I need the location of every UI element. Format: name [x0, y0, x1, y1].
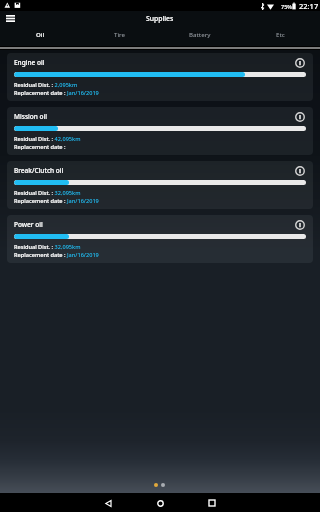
- button[interactable]: Engine oil: [7, 53, 313, 101]
- staticText: Mission oil: [14, 112, 48, 121]
- button[interactable]: Information: [293, 218, 306, 231]
- staticText: Break/Clutch oil: [14, 166, 64, 175]
- button[interactable]: Recent apps: [197, 494, 226, 512]
- button[interactable]: Etc: [240, 28, 320, 46]
- staticText: Supplies: [146, 14, 174, 23]
- staticText: Oil: [36, 30, 45, 38]
- staticText: 22:17: [299, 1, 319, 11]
- staticText: Battery: [189, 30, 211, 38]
- staticText: 75%: [281, 3, 292, 10]
- staticText: Residual Dist. : 42,095km Replacement da…: [14, 135, 81, 150]
- staticText: Residual Dist. : 2,095km Replacement dat…: [14, 81, 99, 96]
- button[interactable]: Information: [293, 56, 306, 69]
- staticText: Etc: [276, 30, 285, 38]
- button[interactable]: Information: [293, 164, 306, 177]
- button[interactable]: Oil: [0, 28, 80, 46]
- staticText: Power oil: [14, 220, 43, 229]
- button[interactable]: Home: [146, 494, 175, 512]
- button[interactable]: Mission oil: [7, 107, 313, 155]
- button[interactable]: Power oil: [7, 215, 313, 263]
- button[interactable]: Tire: [80, 28, 160, 46]
- staticText: Engine oil: [14, 58, 45, 67]
- staticText: Residual Dist. : 32,095km Replacement da…: [14, 243, 99, 258]
- button[interactable]: Battery: [160, 28, 240, 46]
- staticText: Tire: [114, 30, 126, 38]
- button[interactable]: Information: [293, 110, 306, 123]
- button[interactable]: Open navigation menu: [0, 11, 20, 28]
- button[interactable]: Back: [94, 494, 123, 512]
- button[interactable]: Break/Clutch oil: [7, 161, 313, 209]
- staticText: Residual Dist. : 32,095km Replacement da…: [14, 189, 99, 204]
